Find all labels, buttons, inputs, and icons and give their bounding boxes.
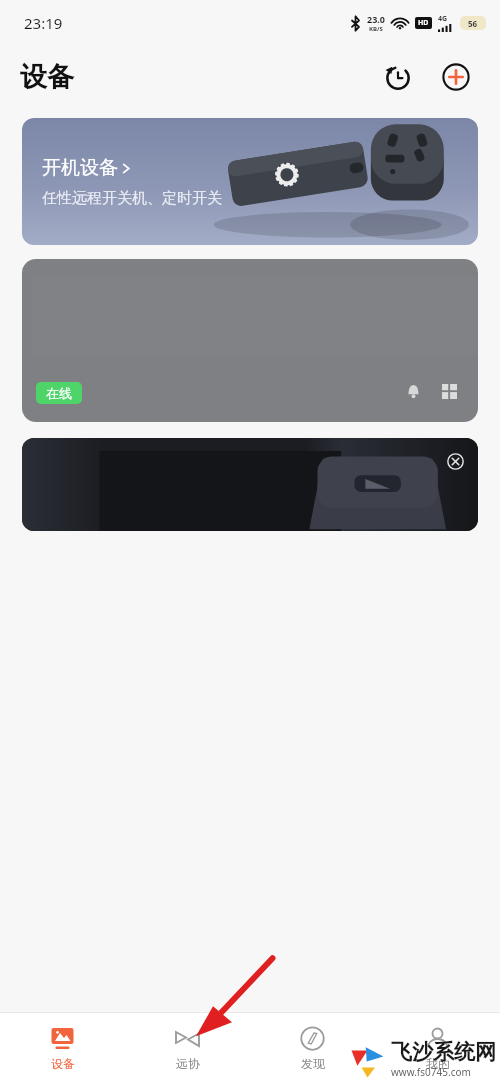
button[interactable]: History [376, 55, 420, 99]
staticText: 任性远程开关机、定时开关 [42, 189, 222, 208]
staticText: KB/S [369, 25, 383, 33]
button[interactable]: 在线 [22, 259, 478, 422]
staticText: 我的 [426, 1056, 450, 1071]
button[interactable]: Add device [434, 55, 478, 99]
staticText: 23:19 [24, 13, 63, 33]
staticText: 在线 [46, 385, 72, 401]
staticText: 56 [468, 18, 478, 29]
staticText: 开机设备 [42, 156, 118, 180]
staticText: www.fs0745.com [391, 1065, 471, 1079]
staticText: 4G [438, 14, 448, 24]
staticText: 发现 [301, 1056, 325, 1071]
button[interactable]: 我的 [375, 1013, 500, 1084]
button[interactable]: 发现 [250, 1013, 375, 1084]
staticText: 飞沙系统网 [391, 1039, 496, 1065]
staticText: 设备 [20, 60, 74, 94]
button[interactable]: 远协 [125, 1013, 250, 1084]
button[interactable]: 开机设备 [22, 118, 478, 245]
staticText: 设备 [51, 1056, 75, 1071]
button[interactable]: Close [442, 448, 468, 474]
staticText: 23.0 [367, 13, 385, 25]
button[interactable]: 设备 [0, 1013, 125, 1084]
staticText: HD [418, 18, 429, 28]
staticText: 远协 [176, 1056, 200, 1071]
button[interactable]: Close [22, 438, 478, 531]
button[interactable]: Notifications [400, 378, 426, 404]
button[interactable]: Windows [436, 378, 462, 404]
